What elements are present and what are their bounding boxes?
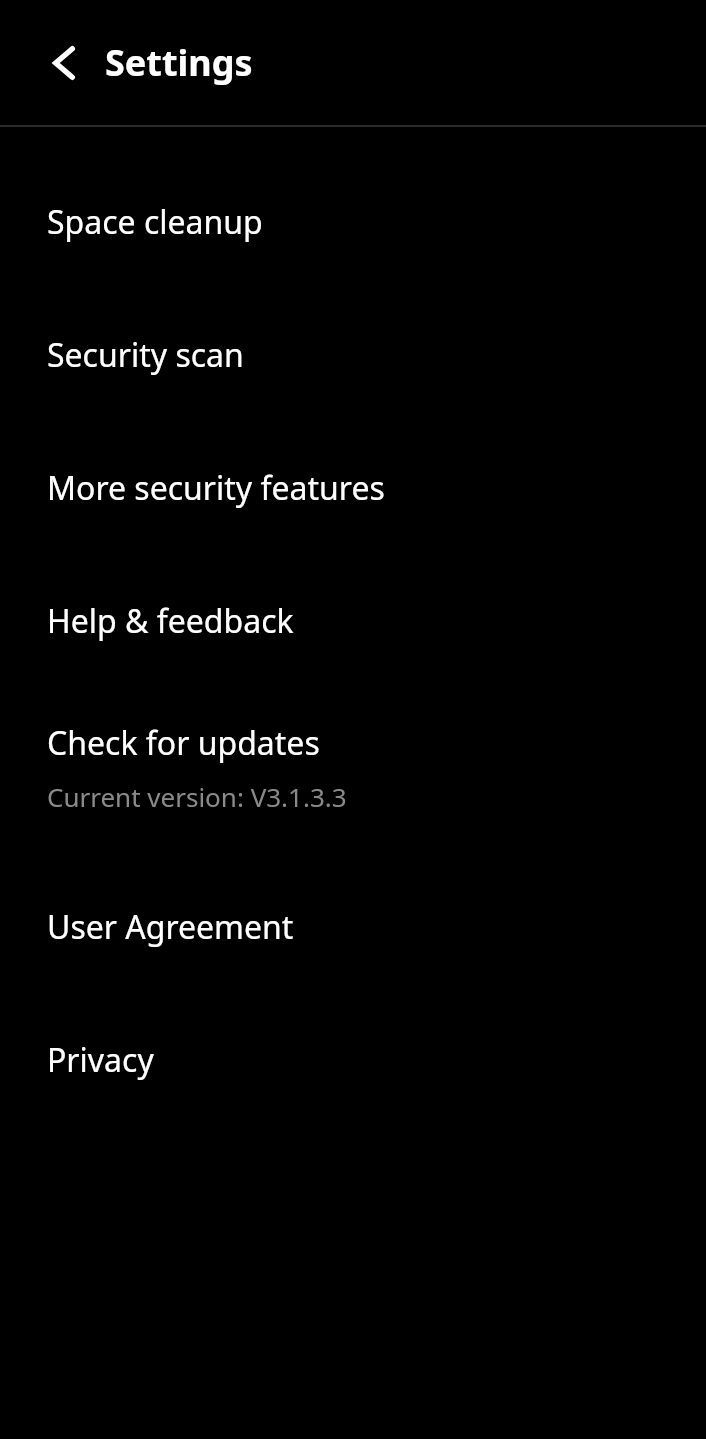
button[interactable]: Security scan (0, 288, 706, 421)
button[interactable]: User Agreement (0, 860, 706, 993)
staticText: Privacy (47, 1038, 154, 1082)
staticText: Security scan (47, 333, 244, 377)
staticText: Help & feedback (47, 599, 294, 643)
button[interactable]: Help & feedback (0, 554, 706, 687)
staticText: Space cleanup (47, 200, 263, 244)
button[interactable]: Check for updates (0, 687, 706, 860)
staticText: More security features (47, 466, 385, 510)
staticText: Check for updates (47, 721, 320, 765)
staticText: Settings (105, 38, 253, 87)
button[interactable]: Back (31, 30, 97, 96)
button[interactable]: More security features (0, 421, 706, 554)
button[interactable]: Privacy (0, 993, 706, 1126)
staticText: User Agreement (47, 905, 294, 949)
button[interactable]: Space cleanup (0, 155, 706, 288)
staticText: Current version: V3.1.3.3 (47, 779, 347, 814)
